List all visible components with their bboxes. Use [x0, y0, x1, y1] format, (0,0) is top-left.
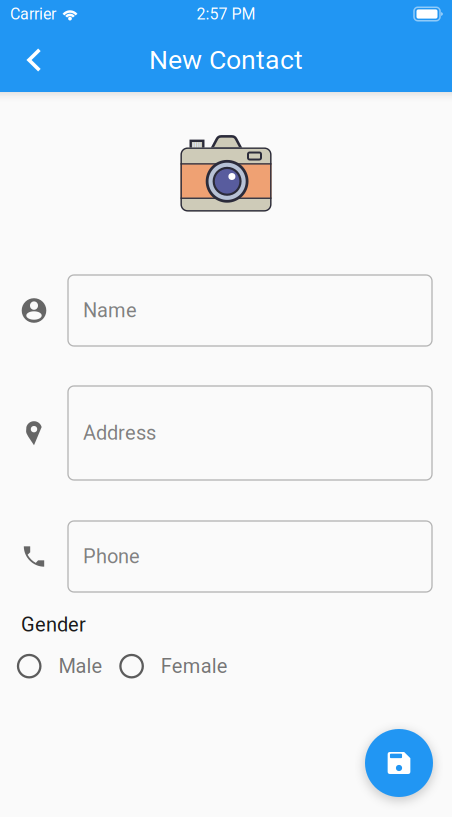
button[interactable]: Female	[120, 654, 228, 678]
staticText: Carrier	[10, 5, 56, 23]
button[interactable]: Male	[18, 654, 102, 678]
staticText: Address	[83, 421, 156, 445]
staticText: Phone	[83, 545, 140, 568]
staticText: New Contact	[149, 44, 303, 76]
staticText: Female	[161, 654, 228, 678]
button[interactable]: Address	[68, 386, 432, 480]
staticText: 2:57 PM	[196, 5, 255, 23]
staticText: Gender	[21, 613, 86, 636]
staticText: Male	[58, 654, 102, 678]
button[interactable]: Phone	[68, 521, 432, 592]
button[interactable]: Name	[68, 275, 432, 346]
button[interactable]: Back	[10, 36, 58, 84]
staticText: Name	[83, 299, 137, 322]
button[interactable]: Save	[365, 729, 433, 797]
